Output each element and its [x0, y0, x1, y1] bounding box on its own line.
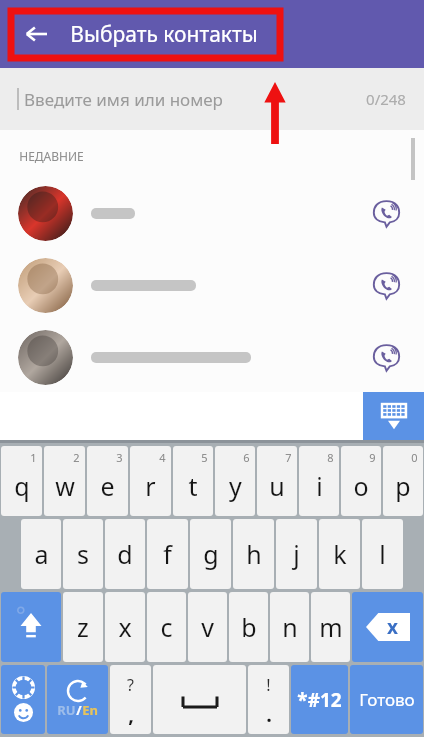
button[interactable]: Готово	[350, 665, 423, 734]
staticText: u	[269, 469, 285, 503]
staticText: 9	[369, 450, 376, 465]
staticText: w	[55, 469, 75, 503]
staticText: t	[188, 469, 198, 503]
button[interactable]: Viber call	[0, 328, 424, 386]
staticText: 0/248	[366, 89, 406, 109]
button[interactable]: g	[190, 519, 231, 589]
button[interactable]: *#12	[291, 665, 348, 734]
staticText: m	[319, 610, 343, 644]
button[interactable]: Hide keyboard	[363, 392, 424, 440]
staticText: 6	[243, 450, 250, 465]
staticText: d	[117, 537, 133, 571]
staticText: 4	[159, 450, 166, 465]
button[interactable]: ?	[110, 665, 151, 734]
staticText: h	[246, 537, 262, 571]
button[interactable]: 8	[299, 446, 339, 516]
staticText: f	[163, 537, 172, 571]
button[interactable]: s	[63, 519, 103, 589]
staticText: 3	[116, 450, 123, 465]
button[interactable]: 5	[173, 446, 213, 516]
staticText: Введите имя или номер	[24, 88, 223, 111]
staticText: /	[76, 701, 82, 719]
staticText: 2	[73, 450, 80, 465]
staticText: En	[82, 701, 98, 719]
staticText: l	[379, 537, 386, 571]
button[interactable]: Введите имя или номер	[0, 68, 424, 130]
button[interactable]: Shift	[1, 592, 61, 662]
staticText: s	[77, 537, 89, 571]
staticText: !	[266, 674, 271, 696]
button[interactable]: a	[21, 519, 61, 589]
button[interactable]: j	[276, 519, 317, 589]
staticText: 1	[30, 450, 37, 465]
staticText: .	[266, 701, 272, 728]
button[interactable]: c	[147, 592, 186, 662]
button[interactable]: 4	[130, 446, 171, 516]
button[interactable]: 6	[215, 446, 255, 516]
staticText: i	[316, 469, 323, 503]
staticText: o	[353, 469, 369, 503]
button[interactable]: 7	[257, 446, 297, 516]
button[interactable]	[153, 665, 246, 734]
staticText: a	[34, 537, 49, 571]
button[interactable]: Viber call	[0, 184, 424, 242]
button[interactable]: 2	[44, 446, 85, 516]
button[interactable]: Settings	[1, 665, 45, 734]
button[interactable]: m	[311, 592, 350, 662]
staticText: v	[201, 610, 214, 644]
button[interactable]: Viber call	[366, 193, 406, 233]
button[interactable]: Viber call	[366, 337, 406, 377]
button[interactable]: z	[63, 592, 103, 662]
staticText: Готово	[359, 688, 415, 711]
button[interactable]: Viber call	[366, 265, 406, 305]
staticText: x	[387, 614, 398, 640]
button[interactable]: Viber call	[0, 256, 424, 314]
staticText: Выбрать контакты	[70, 20, 258, 49]
button[interactable]: f	[147, 519, 188, 589]
staticText: *#12	[297, 687, 342, 713]
button[interactable]: n	[270, 592, 309, 662]
button[interactable]: x	[105, 592, 145, 662]
staticText: НЕДАВНИЕ	[19, 148, 84, 164]
staticText: y	[229, 469, 242, 503]
button[interactable]: RU	[47, 665, 108, 734]
staticText: e	[100, 469, 115, 503]
staticText: 8	[327, 450, 334, 465]
button[interactable]: v	[188, 592, 227, 662]
button[interactable]: h	[233, 519, 274, 589]
staticText: x	[118, 610, 132, 644]
staticText: z	[77, 610, 89, 644]
button[interactable]: 3	[87, 446, 128, 516]
button[interactable]: !	[248, 665, 289, 734]
staticText: 5	[201, 450, 208, 465]
button[interactable]: k	[319, 519, 360, 589]
staticText: g	[203, 537, 219, 571]
button[interactable]: Backspace	[352, 592, 423, 662]
staticText: ,	[128, 701, 134, 728]
staticText: p	[395, 469, 411, 503]
button[interactable]: 1	[1, 446, 42, 516]
staticText: q	[14, 469, 30, 503]
staticText: n	[282, 610, 298, 644]
staticText: 7	[285, 450, 292, 465]
button[interactable]: l	[362, 519, 403, 589]
staticText: r	[145, 469, 156, 503]
button[interactable]: 9	[341, 446, 381, 516]
button[interactable]: b	[229, 592, 268, 662]
staticText: RU	[57, 701, 76, 719]
button[interactable]: 0	[383, 446, 423, 516]
button[interactable]: Back	[16, 14, 56, 54]
staticText: ?	[127, 674, 134, 696]
staticText: k	[333, 537, 347, 571]
staticText: 0	[411, 450, 418, 465]
staticText: c	[160, 610, 173, 644]
staticText: b	[241, 610, 257, 644]
staticText: j	[293, 537, 300, 571]
button[interactable]: d	[105, 519, 145, 589]
